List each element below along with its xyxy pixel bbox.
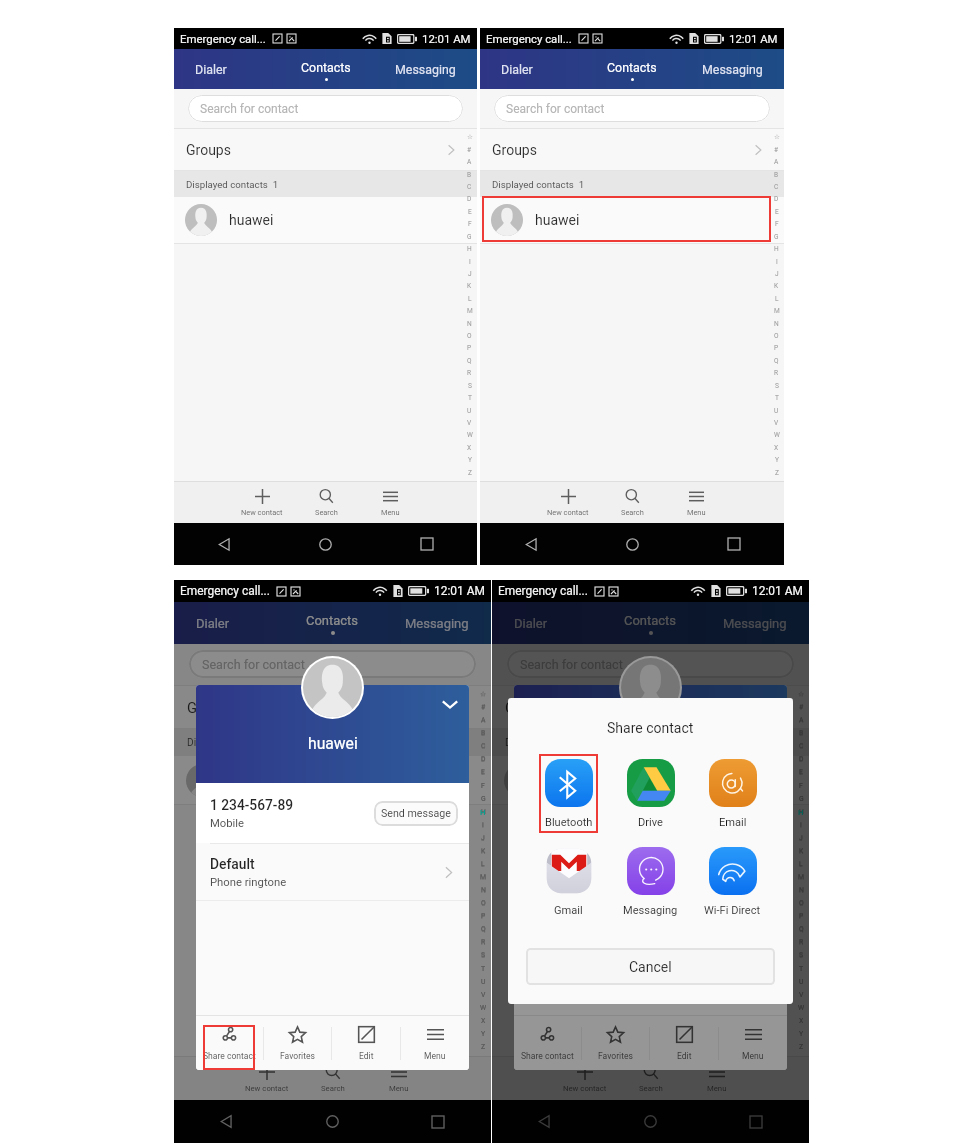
- staticText: Y: [468, 456, 472, 464]
- staticText: S: [799, 952, 804, 960]
- button[interactable]: Collapse: [755, 691, 780, 716]
- button[interactable]: Share contact: [514, 1016, 581, 1070]
- button[interactable]: huawei: [492, 756, 809, 804]
- button[interactable]: New contact: [234, 1057, 300, 1100]
- staticText: Z: [799, 1043, 804, 1051]
- staticText: D: [481, 755, 486, 763]
- staticText: D: [799, 756, 804, 764]
- button[interactable]: huawei: [174, 756, 491, 804]
- staticText: Search for contact: [202, 657, 305, 672]
- staticText: huawei: [232, 772, 279, 789]
- button[interactable]: 1 234-567-89: [196, 783, 469, 843]
- button[interactable]: huawei: [480, 197, 784, 243]
- staticText: Send message: [381, 807, 451, 820]
- button[interactable]: Recent apps: [703, 1100, 809, 1143]
- button[interactable]: Search: [294, 482, 358, 523]
- button[interactable]: Bluetooth: [539, 754, 598, 833]
- staticText: Send message: [699, 807, 769, 820]
- staticText: Displayed contacts 1: [505, 737, 602, 749]
- button[interactable]: Edit: [650, 1016, 718, 1070]
- button[interactable]: Home: [279, 1100, 385, 1143]
- button[interactable]: Messaging: [714, 602, 796, 644]
- button[interactable]: Default: [196, 844, 469, 900]
- staticText: V: [467, 419, 472, 427]
- button[interactable]: Contacts: [292, 49, 360, 89]
- button[interactable]: Menu: [719, 1016, 787, 1070]
- button[interactable]: Contacts: [598, 49, 666, 89]
- button[interactable]: Home: [597, 1100, 703, 1143]
- button[interactable]: Search: [618, 1057, 684, 1100]
- button[interactable]: Send message: [692, 801, 776, 826]
- button[interactable]: Email: [703, 754, 762, 833]
- button[interactable]: Wi-Fi Direct: [703, 842, 762, 921]
- staticText: O: [799, 899, 804, 907]
- staticText: #: [799, 704, 804, 712]
- staticText: L: [799, 861, 803, 869]
- button[interactable]: Search: [300, 1057, 366, 1100]
- button[interactable]: Gmail: [539, 842, 598, 921]
- staticText: T: [481, 965, 486, 973]
- button[interactable]: Back: [174, 1100, 279, 1143]
- button[interactable]: Back: [480, 523, 582, 565]
- staticText: Menu: [424, 1051, 446, 1061]
- button[interactable]: Contacts: [615, 602, 686, 644]
- button[interactable]: Default: [514, 844, 787, 900]
- button[interactable]: Groups: [174, 686, 491, 728]
- button[interactable]: Messaging: [386, 49, 465, 89]
- button[interactable]: Search for contact: [494, 95, 770, 122]
- button[interactable]: Recent apps: [385, 1100, 491, 1143]
- button[interactable]: huawei: [174, 197, 477, 243]
- button[interactable]: 1 234-567-89: [514, 783, 787, 843]
- button[interactable]: Share contact: [196, 1016, 263, 1070]
- button[interactable]: Menu: [366, 1057, 432, 1100]
- button[interactable]: Dialer: [186, 49, 236, 89]
- staticText: O: [467, 332, 472, 340]
- button[interactable]: Home: [582, 523, 683, 565]
- button[interactable]: Recent apps: [376, 523, 477, 565]
- button[interactable]: Groups: [492, 686, 809, 728]
- staticText: J: [481, 835, 485, 843]
- button[interactable]: Messaging: [693, 49, 772, 89]
- button[interactable]: Dialer: [492, 49, 542, 89]
- button[interactable]: Home: [275, 523, 376, 565]
- staticText: #: [799, 703, 804, 711]
- button[interactable]: Dialer: [505, 602, 557, 644]
- button[interactable]: Send message: [374, 801, 458, 826]
- button[interactable]: Contacts: [297, 602, 368, 644]
- button[interactable]: Collapse: [437, 691, 462, 716]
- staticText: Displayed contacts 1: [186, 179, 279, 190]
- button[interactable]: Groups: [480, 129, 784, 170]
- button[interactable]: Back: [492, 1100, 597, 1143]
- button[interactable]: Menu: [401, 1016, 469, 1070]
- button[interactable]: Messaging: [621, 842, 680, 921]
- staticText: Edit: [677, 1051, 692, 1061]
- staticText: C: [774, 183, 779, 191]
- staticText: X: [799, 1017, 804, 1025]
- button[interactable]: Favorites: [264, 1016, 331, 1070]
- button[interactable]: Groups: [174, 129, 477, 170]
- button[interactable]: Cancel: [526, 948, 775, 985]
- staticText: Dialer: [514, 616, 548, 631]
- button[interactable]: Favorites: [582, 1016, 649, 1070]
- button[interactable]: Menu: [358, 482, 422, 523]
- button[interactable]: Search: [600, 482, 664, 523]
- button[interactable]: Menu: [684, 1057, 750, 1100]
- button[interactable]: Recent apps: [683, 523, 784, 565]
- staticText: Share contact: [203, 1051, 256, 1061]
- button[interactable]: New contact: [230, 482, 294, 523]
- button[interactable]: New contact: [552, 1057, 618, 1100]
- staticText: S: [799, 951, 804, 959]
- button[interactable]: Back: [174, 523, 275, 565]
- button[interactable]: Edit: [332, 1016, 400, 1070]
- staticText: Search: [621, 508, 644, 517]
- button[interactable]: Dialer: [187, 602, 239, 644]
- button[interactable]: Drive: [621, 754, 680, 833]
- button[interactable]: Search for contact: [507, 650, 794, 678]
- button[interactable]: Search for contact: [188, 95, 463, 122]
- staticText: P: [481, 912, 486, 920]
- button[interactable]: Search for contact: [189, 650, 476, 678]
- button[interactable]: Messaging: [396, 602, 478, 644]
- staticText: I: [776, 258, 778, 266]
- button[interactable]: New contact: [536, 482, 600, 523]
- button[interactable]: Menu: [664, 482, 728, 523]
